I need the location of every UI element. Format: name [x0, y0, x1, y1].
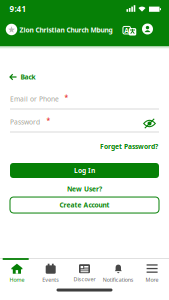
button[interactable]: Forget Password?	[100, 142, 158, 151]
staticText: Log In	[74, 166, 95, 175]
staticText: *	[64, 93, 68, 101]
button[interactable]: More	[135, 261, 169, 285]
staticText: Zion Christian Church Mbung	[19, 26, 112, 34]
button[interactable]: Church logo	[6, 24, 17, 35]
button[interactable]: Account	[142, 23, 153, 34]
button[interactable]: Show password	[143, 118, 156, 129]
button[interactable]: Notifications	[101, 261, 135, 285]
staticText: Email or Phone	[10, 95, 59, 103]
secureTextField[interactable]: Password	[10, 118, 159, 126]
staticText: Events	[42, 276, 59, 283]
button[interactable]: Back	[9, 73, 35, 81]
button[interactable]: Create Account	[10, 197, 159, 213]
textField[interactable]: Email or Phone	[10, 95, 159, 103]
button[interactable]: Discover	[68, 261, 101, 285]
staticText: Forget Password?	[100, 142, 158, 151]
staticText: *	[46, 116, 50, 124]
button[interactable]: Events	[34, 261, 68, 285]
staticText: A	[124, 26, 129, 35]
staticText: 9:41	[9, 4, 26, 14]
staticText: More	[146, 276, 159, 283]
staticText: Notifications	[103, 276, 134, 283]
button[interactable]: Home	[0, 261, 34, 285]
button[interactable]: Change language	[122, 26, 136, 36]
staticText: Back	[20, 73, 35, 81]
staticText: Home	[9, 276, 24, 283]
staticText: Password	[10, 118, 40, 126]
staticText: Discover	[73, 276, 95, 283]
button[interactable]: Log In	[10, 163, 159, 178]
staticText: Create Account	[59, 201, 109, 209]
staticText: New User?	[67, 185, 102, 193]
